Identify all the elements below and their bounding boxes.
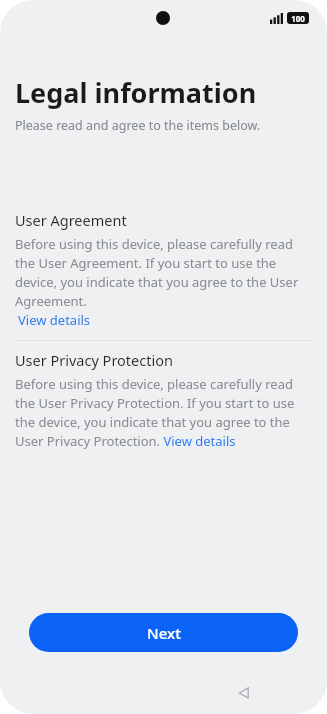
button[interactable]: Back [230,679,258,707]
staticText: Before using this device, please careful… [15,235,309,310]
staticText: User Privacy Protection [15,350,173,370]
staticText: 100 [291,13,305,24]
button[interactable]: Next [29,613,298,652]
staticText: Please read and agree to the items below… [15,117,261,134]
staticText: User Agreement [15,210,127,230]
staticText: Next [147,623,181,643]
button[interactable]: Before using this device, please careful… [15,375,309,450]
staticText: View details [18,311,91,329]
staticText: Before using this device, please careful… [15,375,309,450]
button[interactable]: View details [15,310,97,331]
staticText: Legal information [15,74,257,111]
